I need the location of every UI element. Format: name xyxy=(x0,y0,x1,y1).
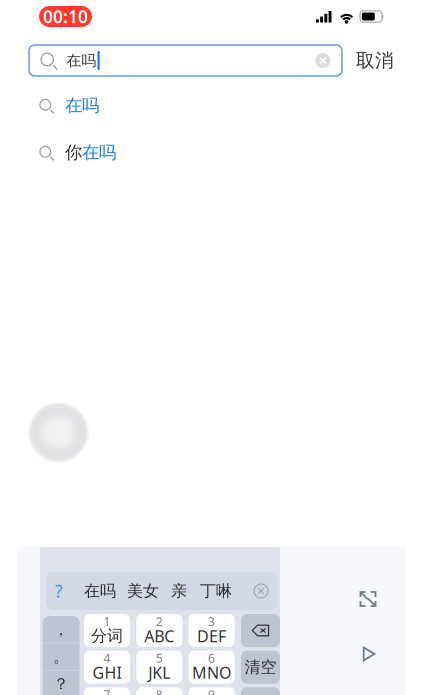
button[interactable]: 7 xyxy=(84,687,130,695)
staticText: 美女 xyxy=(127,581,159,601)
button[interactable]: 取消 xyxy=(350,45,400,76)
staticText: DEF xyxy=(197,625,226,647)
staticText: 3 xyxy=(208,613,215,629)
button[interactable]: Delete candidates xyxy=(246,572,276,610)
staticText: 。 xyxy=(53,647,69,666)
button[interactable]: 3 xyxy=(189,614,235,647)
staticText: MNO xyxy=(192,662,231,683)
button[interactable]: 2 xyxy=(136,614,182,647)
staticText: 00:10 xyxy=(43,5,88,28)
staticText: GHI xyxy=(92,662,121,683)
staticText: 2 xyxy=(156,613,163,629)
staticText: 在吗 xyxy=(82,142,116,163)
button[interactable]: Next xyxy=(346,631,392,677)
staticText: ? xyxy=(55,579,63,602)
staticText: 在吗 xyxy=(84,581,116,601)
staticText: 1 xyxy=(103,613,110,629)
staticText: 亲 xyxy=(171,581,187,601)
button[interactable]: Clear text xyxy=(307,45,339,76)
staticText: 7 xyxy=(103,687,110,695)
staticText: 5 xyxy=(156,650,163,666)
button[interactable]: 9 xyxy=(189,687,235,695)
button[interactable]: 5 xyxy=(136,651,182,684)
staticText: 你 xyxy=(65,142,82,163)
button[interactable]: 8 xyxy=(136,687,182,695)
button[interactable]: Clear xyxy=(241,651,280,684)
staticText: ？ xyxy=(53,674,69,694)
staticText: 8 xyxy=(156,687,163,695)
button[interactable]: Backspace xyxy=(241,614,280,647)
staticText: ABC xyxy=(144,625,174,647)
staticText: 在吗 xyxy=(66,51,96,69)
staticText: 丁啉 xyxy=(200,581,232,601)
staticText: ， xyxy=(53,619,69,639)
button[interactable]: 4 xyxy=(84,651,130,684)
button[interactable]: 你 xyxy=(0,129,421,176)
staticText: JKL xyxy=(148,662,170,683)
staticText: 取消 xyxy=(356,49,394,72)
staticText: 6 xyxy=(208,650,215,666)
staticText: 在吗 xyxy=(65,95,99,116)
button[interactable]: 1 xyxy=(84,614,130,647)
button[interactable]: 在吗 xyxy=(0,82,421,129)
button[interactable]: 6 xyxy=(189,651,235,684)
staticText: 4 xyxy=(103,650,110,666)
staticText: 清空 xyxy=(244,657,276,677)
button[interactable]: Return xyxy=(241,687,280,695)
staticText: 9 xyxy=(208,687,215,695)
staticText: 分词 xyxy=(91,626,123,646)
button[interactable]: Expand keyboard xyxy=(345,576,391,622)
